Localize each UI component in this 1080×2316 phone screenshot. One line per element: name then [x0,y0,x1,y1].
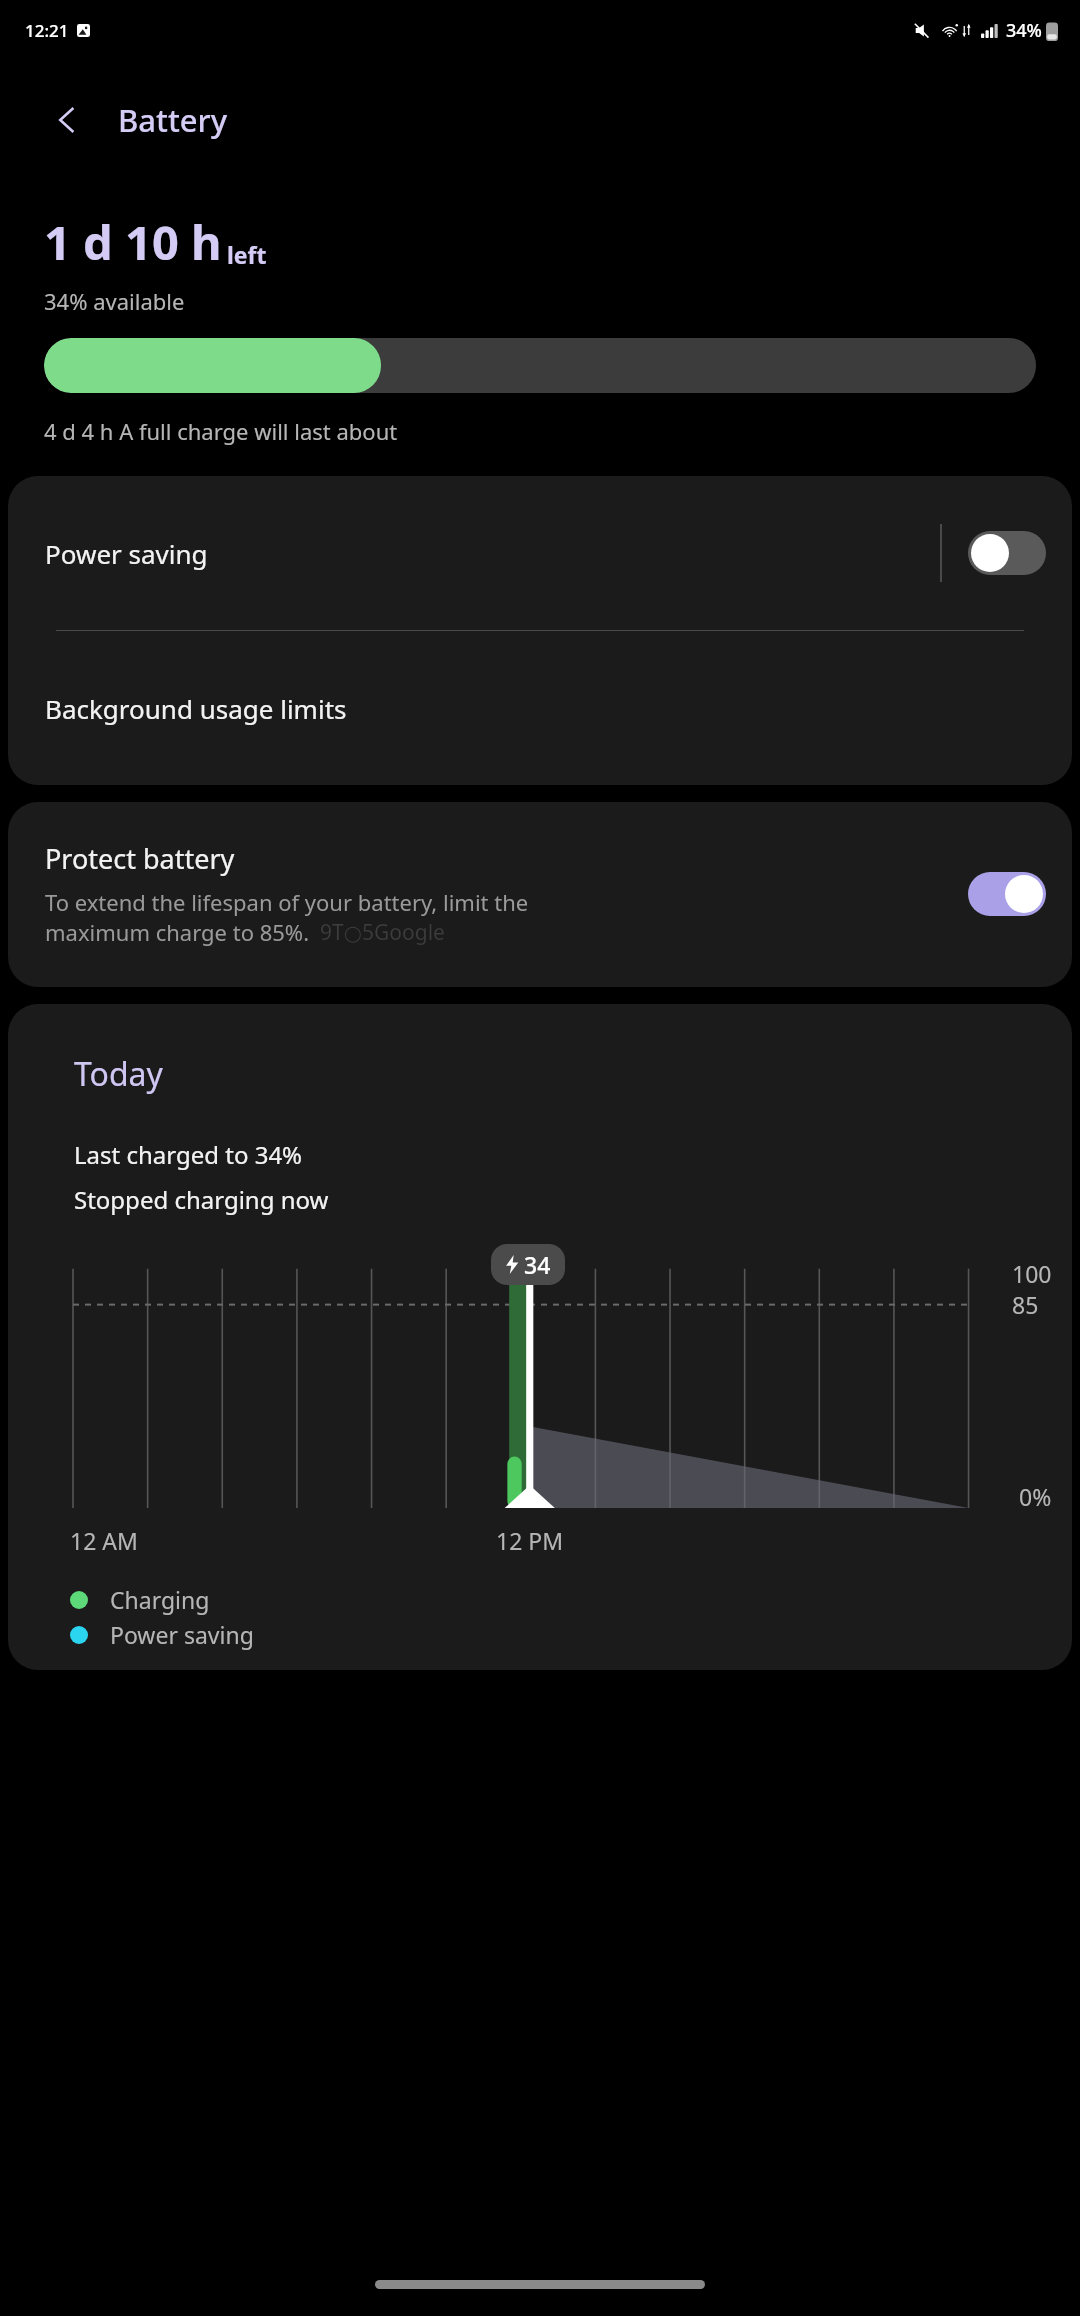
button[interactable]: Power saving [8,476,1072,630]
staticText: Power saving [45,536,940,571]
button[interactable]: Protect battery [8,802,1072,987]
staticText: Stopped charging now [74,1183,329,1216]
staticText: maximum charge to 85%. [45,917,310,947]
staticText: 34% [1006,18,1042,43]
staticText: 34% available [44,286,185,316]
staticText: Background usage limits [45,691,347,726]
staticText: Protect battery [45,840,235,877]
staticText: Battery [118,99,228,141]
staticText: Charging [110,1584,210,1615]
staticText: 85 [1012,1289,1039,1320]
staticText: 100 [1012,1258,1052,1289]
staticText: To extend the lifespan of your battery, … [45,887,529,917]
staticText: Last charged to 34% [74,1138,303,1171]
button[interactable]: Background usage limits [8,631,1072,785]
staticText: 9T○5Google [320,918,445,947]
button[interactable]: Back [40,92,96,148]
staticText: 12 AM [70,1525,138,1556]
staticText: 4 d 4 h A full charge will last about [44,416,398,446]
staticText: 12:21 [25,19,69,42]
staticText: 0% [1019,1481,1052,1512]
staticText: Power saving [110,1619,254,1650]
button[interactable]: On [968,872,1046,916]
staticText: 1 d 10 h [44,210,222,274]
staticText: 34 [524,1249,551,1280]
staticText: 12 PM [496,1525,564,1556]
staticText: Today [74,1052,163,1096]
button[interactable]: Today [8,1004,1072,1670]
staticText: left [227,239,267,270]
button[interactable]: Off [968,531,1046,575]
